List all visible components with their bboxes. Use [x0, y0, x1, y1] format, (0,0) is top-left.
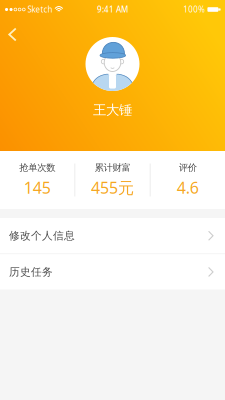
button[interactable]: 修改个人信息	[0, 218, 225, 253]
staticText: 455元	[91, 177, 134, 198]
staticText: 9:41 AM	[97, 4, 128, 15]
button[interactable]: 历史任务	[0, 254, 225, 290]
staticText: 累计财富	[94, 162, 130, 173]
staticText: Sketch	[27, 4, 52, 15]
staticText: 历史任务	[9, 265, 53, 278]
staticText: 4.6	[177, 177, 199, 198]
staticText: 100%	[183, 4, 205, 15]
staticText: 王大锤	[93, 102, 132, 118]
staticText: 145	[24, 177, 51, 198]
staticText: 抢单次数	[19, 162, 55, 173]
staticText: 评价	[179, 162, 197, 173]
button[interactable]: Back	[3, 22, 22, 46]
staticText: 修改个人信息	[9, 229, 75, 242]
